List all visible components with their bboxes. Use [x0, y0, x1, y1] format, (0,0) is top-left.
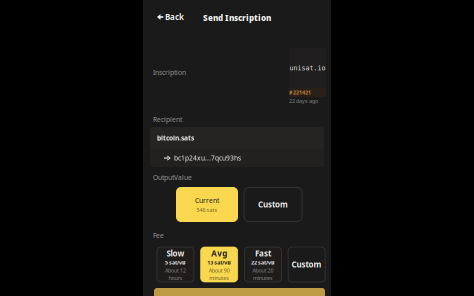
staticText: Slow: [166, 248, 184, 259]
staticText: Custom: [258, 199, 288, 210]
button[interactable]: Fast: [244, 247, 281, 282]
staticText: 22 days ago: [289, 97, 318, 105]
staticText: bc1p24xu...7qcu93hs: [174, 154, 241, 162]
button[interactable]: Custom: [244, 187, 302, 221]
staticText: minutes: [253, 274, 273, 282]
button[interactable]: unisat.io: [289, 48, 326, 105]
staticText: 546 sats: [196, 206, 217, 214]
staticText: Back: [165, 12, 184, 22]
button[interactable]: Current: [176, 187, 238, 222]
staticText: About 12: [165, 267, 186, 274]
staticText: Custom: [292, 259, 322, 270]
staticText: Recipient: [153, 115, 182, 124]
button[interactable]: Avg: [201, 247, 238, 282]
staticText: Fast: [255, 248, 271, 259]
staticText: 5 sat/vB: [165, 259, 186, 266]
staticText: minutes: [209, 274, 229, 282]
button[interactable]: Slow: [157, 247, 194, 282]
button[interactable]: Next: [154, 288, 325, 296]
staticText: About 20: [252, 267, 273, 274]
staticText: # 221421: [289, 89, 311, 96]
staticText: Fee: [153, 231, 164, 240]
button[interactable]: bitcoin.sats: [150, 127, 324, 167]
staticText: OutputValue: [153, 173, 192, 182]
button[interactable]: Back: [143, 9, 190, 26]
staticText: unisat.io: [289, 64, 325, 72]
staticText: 22 sat/vB: [251, 259, 275, 266]
staticText: 13 sat/vB: [207, 259, 231, 266]
staticText: bitcoin.sats: [157, 134, 194, 142]
staticText: hours: [168, 274, 182, 282]
staticText: Send Inscription: [203, 13, 271, 23]
staticText: Inscription: [153, 68, 186, 77]
staticText: Current: [195, 196, 219, 205]
staticText: About 90: [209, 267, 230, 274]
staticText: Avg: [211, 248, 227, 259]
button[interactable]: Custom: [288, 247, 325, 282]
